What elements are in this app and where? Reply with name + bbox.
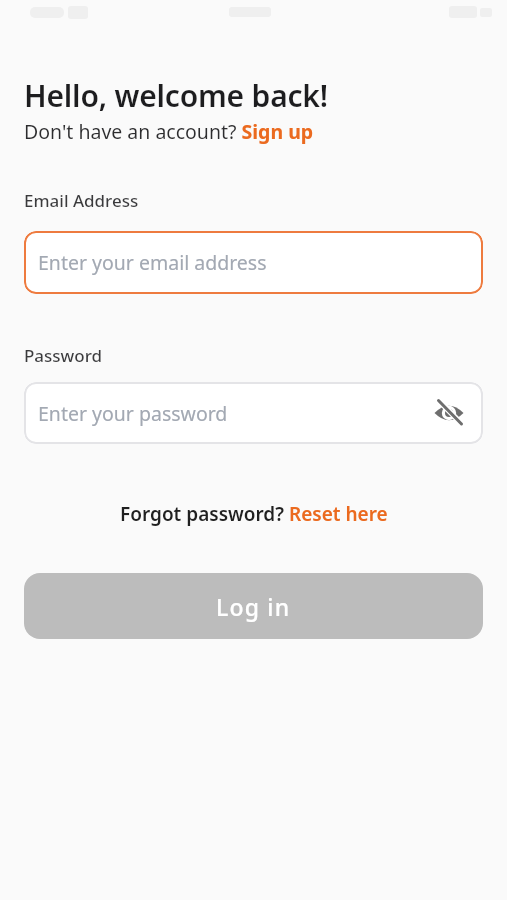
staticText: Log in bbox=[216, 591, 291, 622]
staticText: Forgot password? Reset here bbox=[120, 501, 388, 527]
button[interactable]: Don't have an account? Sign up bbox=[24, 118, 314, 145]
staticText: Don't have an account? Sign up bbox=[24, 118, 314, 145]
button[interactable]: Log in bbox=[24, 573, 483, 639]
button[interactable]: Enter your email address bbox=[24, 231, 483, 294]
button[interactable]: Forgot password? Reset here bbox=[24, 501, 483, 527]
staticText: Password bbox=[24, 344, 103, 367]
button[interactable]: Enter your password bbox=[24, 382, 483, 444]
staticText: Enter your password bbox=[38, 400, 433, 427]
staticText: Enter your email address bbox=[38, 249, 267, 276]
staticText: Hello, welcome back! bbox=[24, 75, 328, 116]
staticText: Email Address bbox=[24, 189, 139, 212]
